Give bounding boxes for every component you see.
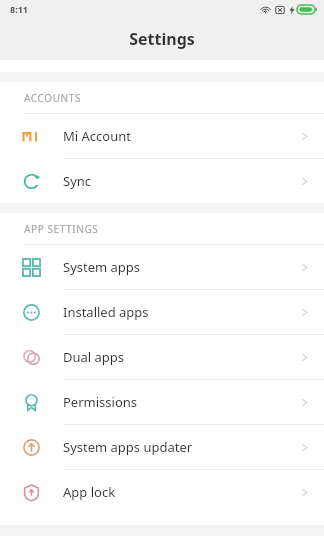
- staticText: App lock: [63, 483, 299, 501]
- staticText: ACCOUNTS: [24, 91, 81, 105]
- staticText: Settings: [129, 28, 195, 50]
- button[interactable]: Installed apps: [0, 290, 324, 334]
- staticText: System apps updater: [63, 438, 299, 456]
- button[interactable]: App lock: [0, 470, 324, 514]
- staticText: APP SETTINGS: [24, 222, 99, 236]
- staticText: Permissions: [63, 393, 299, 411]
- staticText: Sync: [63, 172, 299, 190]
- staticText: Installed apps: [63, 303, 299, 321]
- button[interactable]: System apps: [0, 245, 324, 289]
- staticText: Mi Account: [63, 127, 299, 145]
- staticText: 8:11: [10, 3, 28, 15]
- staticText: System apps: [63, 258, 299, 276]
- button[interactable]: Mi Account: [0, 114, 324, 158]
- staticText: Dual apps: [63, 348, 299, 366]
- button[interactable]: Permissions: [0, 380, 324, 424]
- button[interactable]: Sync: [0, 159, 324, 203]
- button[interactable]: Dual apps: [0, 335, 324, 379]
- button[interactable]: System apps updater: [0, 425, 324, 469]
